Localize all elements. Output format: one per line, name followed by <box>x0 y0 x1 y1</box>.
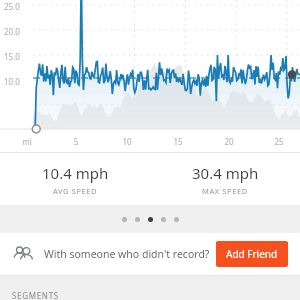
other: Friends <box>12 243 34 265</box>
staticText: SEGMENTS <box>12 290 59 300</box>
staticText: 15 <box>168 136 188 147</box>
staticText: 10.4 mph <box>42 163 109 183</box>
button[interactable]: Add Friend <box>216 241 288 267</box>
staticText: AVG SPEED <box>53 186 98 196</box>
staticText: 10.0 <box>4 76 20 87</box>
button[interactable] <box>161 217 166 222</box>
staticText: 15.0 <box>4 51 20 62</box>
button[interactable]: 10.4 mph <box>0 153 150 205</box>
staticText: With someone who didn't record? <box>44 247 210 261</box>
staticText: 30.4 mph <box>192 163 259 183</box>
staticText: 20 <box>219 136 239 147</box>
staticText: 10 <box>117 136 137 147</box>
staticText: 25.0 <box>4 1 20 12</box>
staticText: 5 <box>66 136 86 147</box>
button[interactable] <box>122 217 127 222</box>
staticText: MAX SPEED <box>202 186 248 196</box>
button[interactable] <box>148 217 153 222</box>
button[interactable]: 30.4 mph <box>150 153 300 205</box>
staticText: Add Friend <box>226 247 278 261</box>
staticText: 20.0 <box>4 26 20 37</box>
button[interactable] <box>174 217 179 222</box>
button[interactable] <box>135 217 140 222</box>
staticText: mi <box>17 136 37 147</box>
staticText: 25 <box>269 136 289 147</box>
